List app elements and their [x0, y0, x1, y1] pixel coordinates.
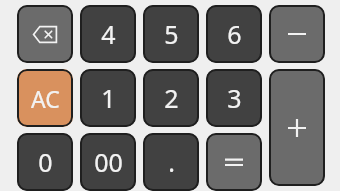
button[interactable]: Equals [206, 133, 262, 191]
button[interactable]: Backspace [17, 5, 73, 63]
staticText: 00 [94, 145, 123, 179]
button[interactable]: AC [17, 69, 73, 127]
button[interactable]: 00 [80, 133, 136, 191]
button[interactable]: 3 [206, 69, 262, 127]
staticText: 4 [101, 17, 116, 51]
button[interactable]: Plus [269, 69, 325, 186]
staticText: 5 [164, 17, 179, 51]
button[interactable]: 4 [80, 5, 136, 63]
button[interactable]: . [143, 133, 199, 191]
button[interactable]: 5 [143, 5, 199, 63]
button[interactable]: 0 [17, 133, 73, 191]
button[interactable]: 6 [206, 5, 262, 63]
staticText: 6 [227, 17, 242, 51]
button[interactable]: Minus [269, 5, 325, 63]
staticText: 3 [227, 81, 242, 115]
staticText: 0 [38, 145, 53, 179]
button[interactable]: 1 [80, 69, 136, 127]
staticText: . [168, 145, 175, 179]
staticText: 2 [164, 81, 179, 115]
staticText: 1 [101, 81, 116, 115]
button[interactable]: 2 [143, 69, 199, 127]
staticText: AC [31, 83, 60, 114]
